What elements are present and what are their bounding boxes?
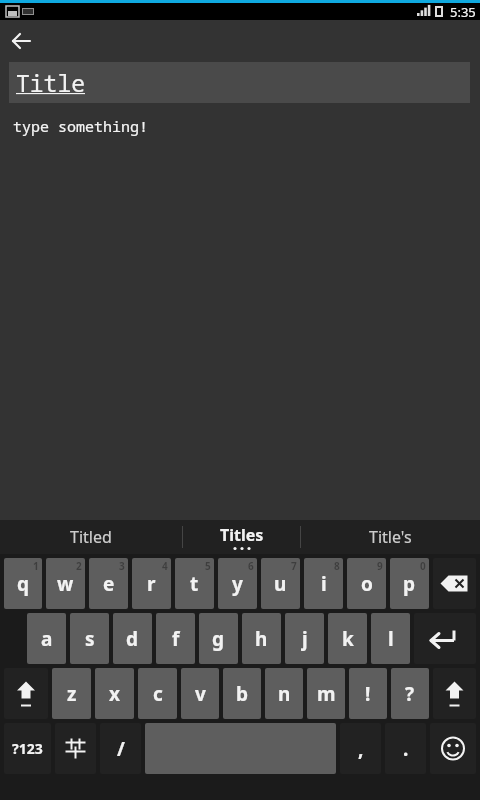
staticText: 9 (377, 559, 383, 573)
button[interactable]: 2 (46, 558, 85, 609)
staticText: 3 (119, 559, 125, 573)
staticText: 5:35 (450, 3, 476, 20)
button[interactable]: Backspace (433, 558, 476, 609)
button[interactable]: / (100, 723, 141, 774)
staticText: 6 (248, 559, 254, 573)
staticText: i (321, 571, 327, 597)
staticText: o (361, 571, 373, 597)
staticText: Title (16, 67, 86, 98)
staticText: t (190, 571, 199, 597)
button[interactable]: a (27, 613, 66, 664)
staticText: y (232, 571, 243, 597)
button[interactable]: k (328, 613, 367, 664)
staticText: 7 (291, 559, 297, 573)
button[interactable]: Shift (433, 668, 476, 719)
button[interactable]: s (70, 613, 109, 664)
staticText: w (57, 571, 74, 597)
staticText: ? (405, 681, 415, 707)
button[interactable]: j (285, 613, 324, 664)
button[interactable]: 0 (390, 558, 429, 609)
button[interactable]: b (223, 668, 261, 719)
button[interactable]: Title (9, 62, 470, 103)
staticText: j (302, 626, 308, 652)
button[interactable]: . (385, 723, 426, 774)
staticText: type something! (13, 116, 149, 136)
staticText: d (126, 626, 139, 652)
staticText: Title's (369, 526, 412, 548)
button[interactable]: Title's (301, 520, 480, 554)
staticText: . (403, 736, 409, 762)
staticText: Titles (220, 524, 264, 546)
staticText: a (41, 626, 53, 652)
button[interactable]: Emoji (430, 723, 476, 774)
button[interactable]: ?123 (4, 723, 51, 774)
button[interactable]: Enter (414, 613, 476, 664)
staticText: ! (365, 681, 371, 707)
button[interactable]: Titled (0, 520, 182, 554)
button[interactable]: 3 (89, 558, 128, 609)
button[interactable]: d (113, 613, 152, 664)
button[interactable]: z (52, 668, 91, 719)
button[interactable]: 8 (304, 558, 343, 609)
button[interactable]: 7 (261, 558, 300, 609)
button[interactable]: , (340, 723, 381, 774)
staticText: l (388, 626, 394, 652)
button[interactable]: type something! (13, 116, 480, 136)
staticText: b (236, 681, 249, 707)
button[interactable]: ! (349, 668, 387, 719)
staticText: u (274, 571, 287, 597)
staticText: g (212, 626, 225, 652)
button[interactable]: m (307, 668, 345, 719)
staticText: k (342, 626, 354, 652)
staticText: / (117, 736, 125, 762)
button[interactable]: c (138, 668, 177, 719)
staticText: f (172, 626, 180, 652)
button[interactable]: 4 (132, 558, 171, 609)
button[interactable]: f (156, 613, 195, 664)
button[interactable]: x (95, 668, 134, 719)
staticText: z (67, 681, 77, 707)
button[interactable]: g (199, 613, 238, 664)
staticText: v (195, 681, 206, 707)
button[interactable]: h (242, 613, 281, 664)
staticText: e (103, 571, 115, 597)
button[interactable]: 1 (4, 558, 42, 609)
staticText: Titled (70, 526, 112, 548)
button[interactable]: n (265, 668, 303, 719)
button[interactable]: Change language (55, 723, 96, 774)
staticText: 4 (162, 559, 168, 573)
staticText: h (255, 626, 268, 652)
button[interactable]: l (371, 613, 410, 664)
staticText: 1 (33, 559, 39, 573)
staticText: , (358, 736, 364, 762)
staticText: p (403, 571, 416, 597)
staticText: 2 (76, 559, 82, 573)
staticText: r (147, 571, 156, 597)
staticText: m (317, 681, 336, 707)
staticText: 8 (334, 559, 340, 573)
staticText: n (278, 681, 291, 707)
button[interactable]: v (181, 668, 219, 719)
staticText: x (109, 681, 120, 707)
button[interactable]: 5 (175, 558, 214, 609)
button[interactable]: Shift (4, 668, 48, 719)
staticText: ?123 (12, 739, 43, 758)
button[interactable]: 9 (347, 558, 386, 609)
staticText: s (85, 626, 95, 652)
button[interactable]: ? (391, 668, 429, 719)
button[interactable]: Back (0, 20, 42, 62)
staticText: 0 (420, 559, 426, 573)
staticText: q (17, 571, 30, 597)
button[interactable]: Titles (183, 520, 300, 554)
button[interactable]: 6 (218, 558, 257, 609)
staticText: 5 (205, 559, 211, 573)
staticText: c (153, 681, 163, 707)
